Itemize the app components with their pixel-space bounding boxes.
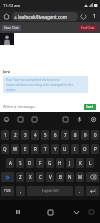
- button[interactable]: Emoji: [0, 112, 13, 126]
- button[interactable]: English (US): [27, 186, 73, 196]
- button[interactable]: F: [36, 158, 44, 168]
- button[interactable]: 6: [51, 130, 59, 140]
- button[interactable]: T: [41, 144, 49, 154]
- button[interactable]: Clipboard: [58, 112, 72, 126]
- button[interactable]: W: [11, 144, 19, 154]
- button[interactable]: ?123: [1, 186, 14, 196]
- staticText: 1: [93, 13, 96, 20]
- button[interactable]: B: [56, 172, 64, 182]
- button[interactable]: X: [26, 172, 34, 182]
- button[interactable]: G: [46, 158, 54, 168]
- button[interactable]: K: [76, 158, 84, 168]
- staticText: .: [79, 188, 81, 194]
- button[interactable]: Send: [84, 104, 96, 110]
- button[interactable]: U: [61, 144, 69, 154]
- button[interactable]: Back: [68, 204, 84, 220]
- staticText: I: [74, 146, 76, 152]
- staticText: 2: [14, 132, 17, 138]
- button[interactable]: End Chat: [79, 25, 97, 31]
- staticText: Save Chat: [4, 26, 19, 30]
- staticText: V: [49, 174, 52, 180]
- button[interactable]: E: [21, 144, 29, 154]
- staticText: 5: [44, 132, 47, 138]
- button[interactable]: Q: [1, 144, 9, 154]
- staticText: C: [39, 174, 42, 180]
- button[interactable]: 7: [61, 130, 69, 140]
- staticText: End Chat: [81, 26, 95, 30]
- staticText: P: [94, 146, 97, 152]
- staticText: 8: [74, 132, 77, 138]
- staticText: ,: [20, 188, 22, 194]
- staticText: X: [29, 174, 32, 180]
- staticText: G: [48, 160, 52, 166]
- button[interactable]: 9: [81, 130, 89, 140]
- button[interactable]: [86, 172, 99, 182]
- staticText: H: [58, 160, 62, 166]
- button[interactable]: [86, 186, 99, 196]
- button[interactable]: A: [6, 158, 14, 168]
- staticText: 1: [4, 132, 7, 138]
- button[interactable]: Stickers: [27, 112, 41, 126]
- button[interactable]: 3: [21, 130, 29, 140]
- button[interactable]: Save Chat: [2, 25, 21, 31]
- staticText: S: [19, 160, 22, 166]
- staticText: F: [39, 160, 42, 166]
- button[interactable]: [1, 172, 14, 182]
- staticText: English (US): [42, 189, 59, 193]
- staticText: 9: [84, 132, 87, 138]
- button[interactable]: 1: [1, 130, 9, 140]
- button[interactable]: Hide keyboard: [85, 206, 97, 218]
- staticText: 11:12 am: [3, 3, 21, 8]
- button[interactable]: M: [76, 172, 84, 182]
- staticText: 0: [94, 132, 97, 138]
- button[interactable]: I: [71, 144, 79, 154]
- button[interactable]: Home: [0, 10, 12, 22]
- button[interactable]: 8: [71, 130, 79, 140]
- button[interactable]: 2: [11, 130, 19, 140]
- button[interactable]: D: [26, 158, 34, 168]
- button[interactable]: Recents: [10, 204, 26, 220]
- button[interactable]: V: [46, 172, 54, 182]
- button[interactable]: O: [81, 144, 89, 154]
- staticText: A: [9, 160, 12, 166]
- button[interactable]: 5: [41, 130, 49, 140]
- staticText: U: [63, 146, 67, 152]
- staticText: 7: [64, 132, 67, 138]
- button[interactable]: P: [91, 144, 99, 154]
- button[interactable]: Voice input: [72, 112, 86, 126]
- button[interactable]: R: [31, 144, 39, 154]
- staticText: Y: [54, 146, 57, 152]
- button[interactable]: J: [66, 158, 74, 168]
- staticText: Jarvi: [3, 70, 11, 74]
- button[interactable]: L: [86, 158, 94, 168]
- button[interactable]: 0: [91, 130, 99, 140]
- staticText: Send: [86, 105, 94, 109]
- staticText: W: [13, 146, 18, 152]
- button[interactable]: H: [56, 158, 64, 168]
- staticText: 3: [24, 132, 27, 138]
- staticText: O: [83, 146, 87, 152]
- button[interactable]: Z: [16, 172, 24, 182]
- button[interactable]: ,: [16, 186, 25, 196]
- button[interactable]: Y: [51, 144, 59, 154]
- staticText: Z: [19, 174, 22, 180]
- staticText: D: [28, 160, 32, 166]
- button[interactable]: N: [66, 172, 74, 182]
- staticText: E: [24, 146, 27, 152]
- button[interactable]: Reload page: [78, 11, 89, 22]
- staticText: Q: [3, 146, 7, 152]
- button[interactable]: .: [75, 186, 84, 196]
- staticText: leafocek/liveagent.com: [18, 14, 67, 20]
- button[interactable]: S: [16, 158, 24, 168]
- button[interactable]: Settings: [86, 112, 100, 126]
- button[interactable]: Tabs: [89, 11, 100, 22]
- staticText: Your Tour has completed the business rep…: [6, 78, 74, 92]
- button[interactable]: 4: [31, 130, 39, 140]
- staticText: N: [68, 174, 72, 180]
- staticText: 6: [54, 132, 57, 138]
- button[interactable]: leafocek/liveagent.com: [12, 12, 78, 21]
- staticText: 4: [34, 132, 37, 138]
- button[interactable]: Home: [42, 204, 58, 220]
- button[interactable]: C: [36, 172, 44, 182]
- button[interactable]: GIF: [13, 112, 27, 126]
